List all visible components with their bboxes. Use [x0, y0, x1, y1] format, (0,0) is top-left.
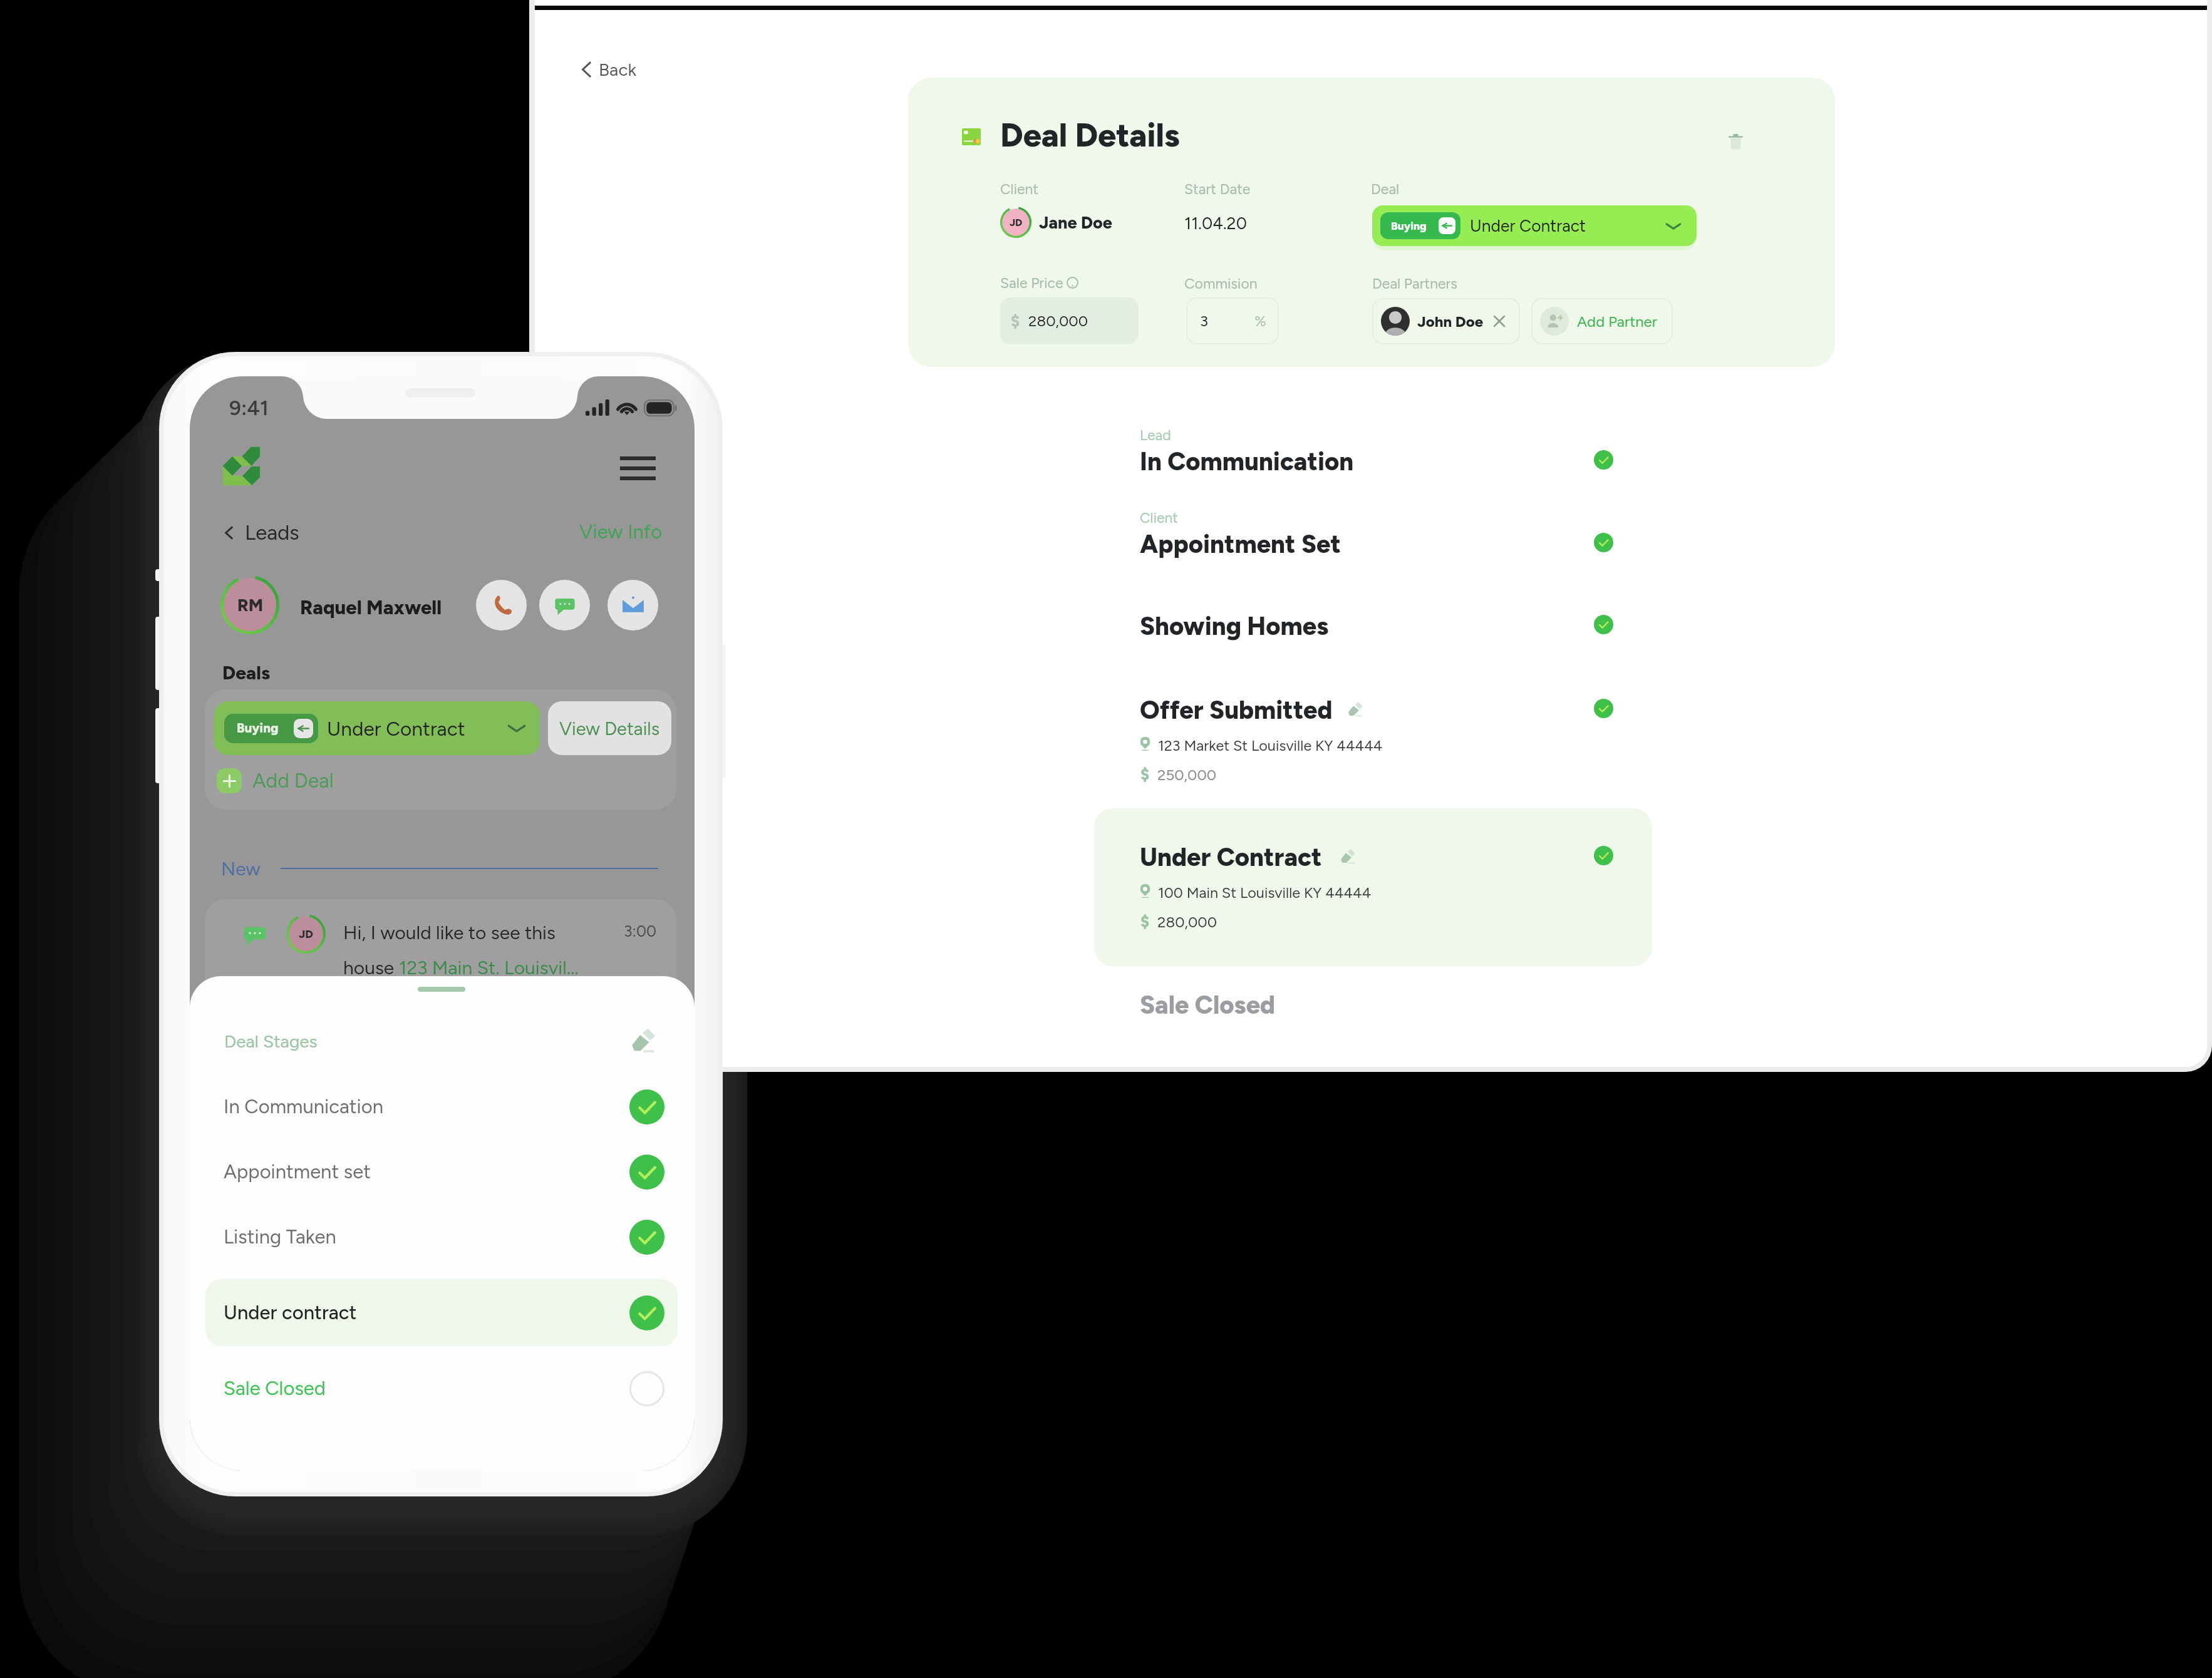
- button[interactable]: Buying: [1372, 205, 1697, 246]
- staticText: Listing Taken: [224, 1225, 336, 1248]
- staticText: Showing Homes: [1140, 611, 1329, 641]
- button[interactable]: 3: [1186, 297, 1279, 344]
- staticText: View Info: [579, 520, 663, 543]
- staticText: In Communication: [224, 1095, 384, 1118]
- button[interactable]: Sale Closed: [205, 1355, 678, 1422]
- staticText: 3:00: [624, 922, 656, 940]
- staticText: Under Contract: [1470, 216, 1586, 236]
- staticText: Under Contract: [327, 717, 465, 741]
- button[interactable]: Edit Under Contract: [1336, 846, 1358, 867]
- button[interactable]: Offer Submitted stage: [1127, 686, 1628, 786]
- button[interactable]: Delete deal: [1713, 126, 1758, 157]
- staticText: $: [1011, 311, 1020, 331]
- staticText: Deal Partners: [1372, 275, 1458, 292]
- button[interactable]: Add Deal: [214, 766, 336, 796]
- button[interactable]: [1094, 808, 1652, 966]
- button[interactable]: Stage complete: [1587, 526, 1620, 558]
- staticText: 123 Main St. Louisvil...: [399, 956, 579, 979]
- staticText: Client: [1140, 509, 1179, 527]
- button[interactable]: Stage complete: [1587, 692, 1620, 724]
- staticText: New: [221, 857, 261, 880]
- staticText: 123 Market St Louisville KY 44444: [1158, 737, 1383, 754]
- button[interactable]: Stage complete: [1587, 839, 1620, 872]
- staticText: Deal Stages: [224, 1031, 318, 1052]
- button[interactable]: John Doe: [1372, 298, 1520, 344]
- staticText: Sale Closed: [224, 1377, 326, 1400]
- staticText: Deal Details: [1000, 116, 1180, 155]
- staticText: JD: [299, 927, 313, 941]
- button[interactable]: View Info: [566, 517, 663, 547]
- staticText: Sale Closed: [1140, 990, 1276, 1020]
- staticText: %: [1254, 312, 1266, 330]
- button[interactable]: $: [1000, 297, 1139, 344]
- staticText: $: [1140, 764, 1150, 784]
- staticText: Deal: [1371, 180, 1400, 198]
- staticText: Offer Submitted: [1140, 695, 1333, 725]
- button[interactable]: Showing Homes stage: [1127, 602, 1628, 646]
- button[interactable]: Call: [476, 580, 527, 631]
- staticText: Back: [599, 59, 637, 80]
- staticText: $: [1140, 912, 1150, 931]
- staticText: Appointment Set: [1140, 529, 1341, 559]
- staticText: Raquel Maxwell: [300, 596, 442, 619]
- button[interactable]: Edit Offer Submitted: [1344, 699, 1365, 720]
- staticText: Under contract: [224, 1301, 357, 1324]
- button[interactable]: Under contract: [205, 1279, 678, 1346]
- button[interactable]: Stage complete: [1587, 608, 1620, 641]
- button[interactable]: Stage complete: [1587, 443, 1620, 476]
- button[interactable]: Leads: [217, 517, 304, 549]
- button[interactable]: In Communication: [205, 1073, 678, 1140]
- staticText: Commision: [1184, 275, 1258, 292]
- staticText: 250,000: [1157, 766, 1217, 784]
- staticText: JD: [1010, 217, 1023, 229]
- button[interactable]: Sale Closed stage: [1127, 983, 1628, 1027]
- staticText: Jane Doe: [1039, 212, 1112, 232]
- staticText: 9:41: [229, 396, 269, 421]
- staticText: Deals: [222, 661, 271, 684]
- staticText: Add Partner: [1577, 312, 1657, 331]
- staticText: house: [343, 956, 399, 979]
- staticText: Add Deal: [252, 769, 334, 793]
- staticText: View Details: [559, 718, 660, 739]
- button[interactable]: Add Partner: [1531, 298, 1673, 344]
- staticText: Under Contract: [1140, 842, 1322, 872]
- staticText: In Communication: [1140, 446, 1354, 476]
- staticText: Buying: [237, 721, 279, 736]
- button[interactable]: Edit deal stages: [624, 1023, 661, 1059]
- staticText: Buying: [1391, 219, 1427, 232]
- button[interactable]: Appointment set: [205, 1138, 678, 1205]
- staticText: 280,000: [1157, 913, 1217, 931]
- button[interactable]: Appointment Set stage: [1127, 506, 1628, 560]
- staticText: Hi, I would like to see this: [343, 921, 556, 944]
- staticText: Start Date: [1184, 180, 1251, 198]
- staticText: John Doe: [1417, 312, 1484, 331]
- staticText: 100 Main St Louisville KY 44444: [1158, 884, 1372, 902]
- staticText: 280,000: [1028, 312, 1088, 330]
- staticText: RM: [237, 595, 263, 615]
- staticText: Appointment set: [224, 1160, 371, 1183]
- staticText: Leads: [245, 520, 299, 545]
- staticText: Lead: [1140, 426, 1171, 444]
- button[interactable]: Message: [539, 580, 590, 631]
- button[interactable]: Menu: [611, 450, 664, 486]
- button[interactable]: Email: [607, 580, 658, 631]
- staticText: 3: [1200, 312, 1209, 330]
- staticText: Sale Price: [1000, 274, 1063, 292]
- button[interactable]: Buying: [214, 701, 540, 755]
- staticText: Client: [1000, 180, 1039, 198]
- staticText: 11.04.20: [1184, 213, 1248, 233]
- button[interactable]: In Communication stage: [1127, 423, 1628, 477]
- button[interactable]: Back: [573, 50, 646, 89]
- button[interactable]: Listing Taken: [205, 1203, 678, 1270]
- button[interactable]: View Details: [548, 701, 671, 755]
